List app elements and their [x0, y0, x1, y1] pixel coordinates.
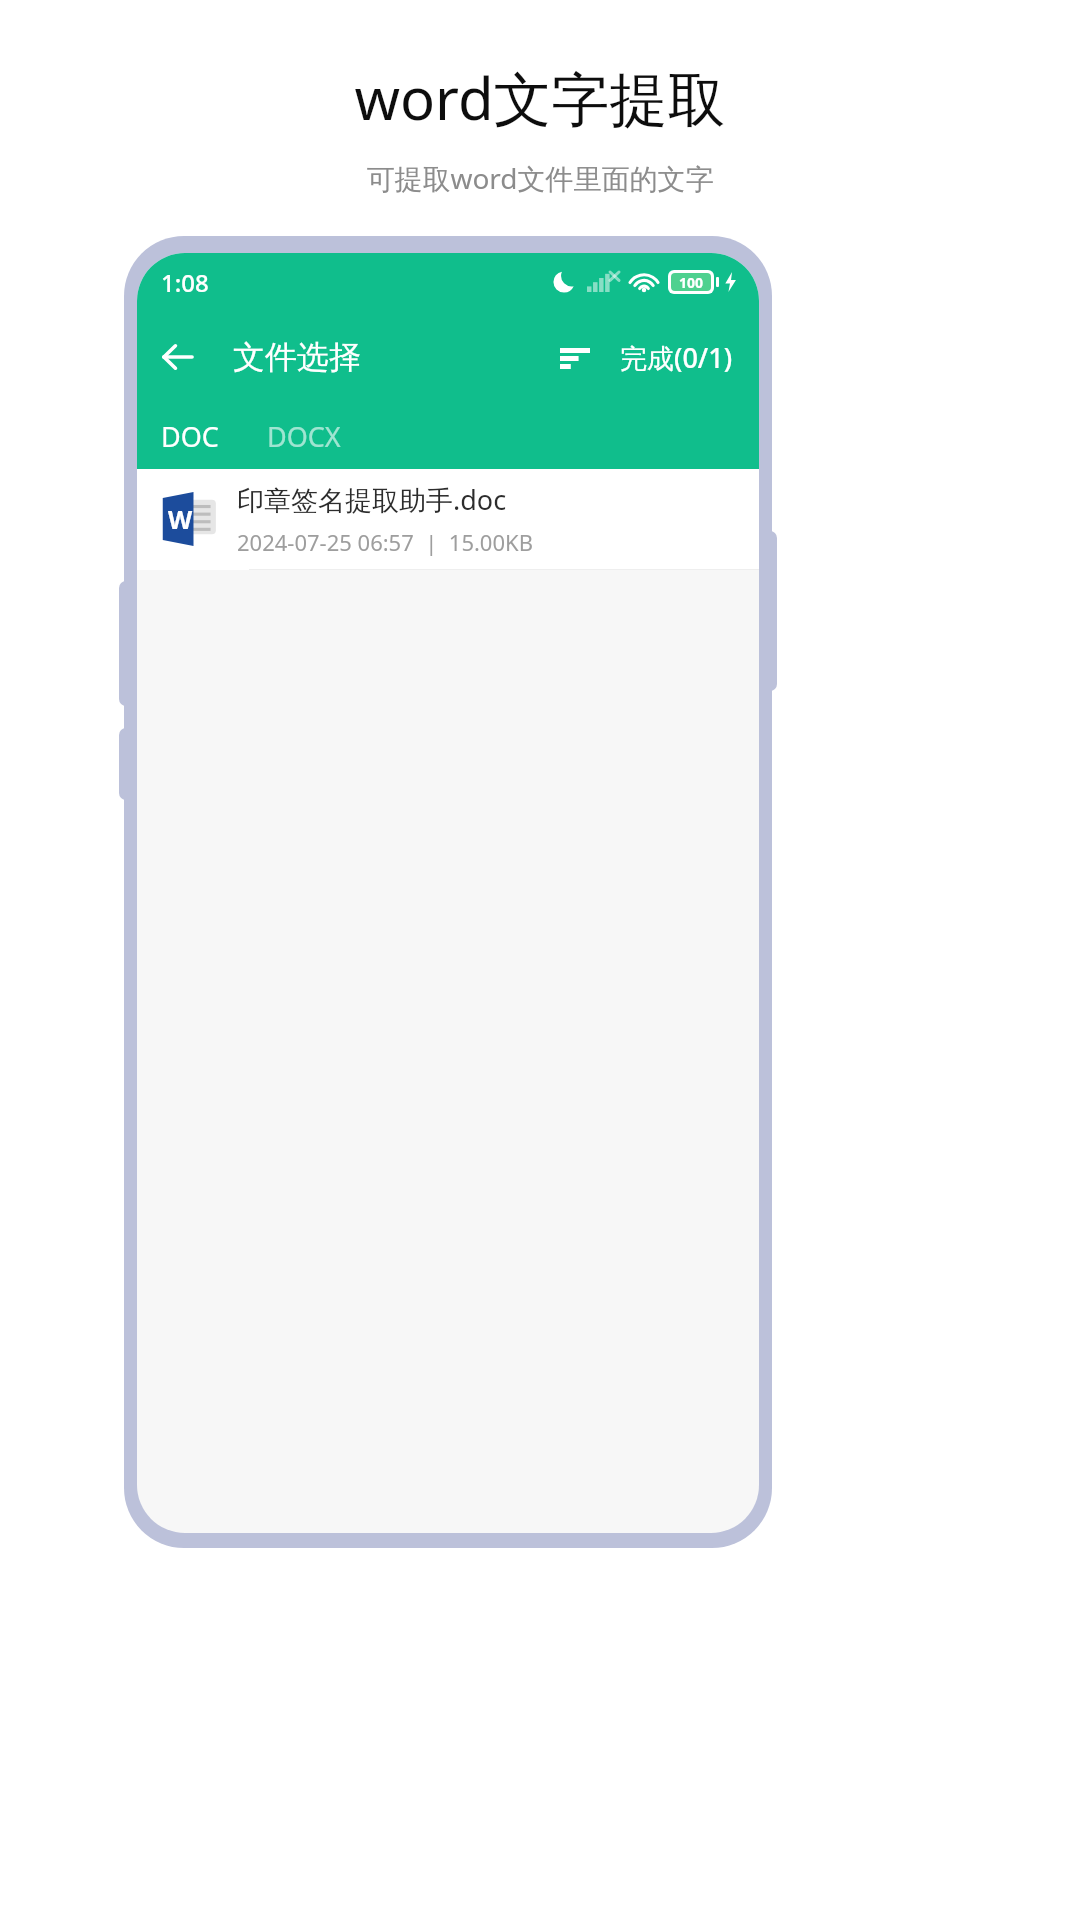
- staticText: DOC: [161, 418, 219, 455]
- staticText: 100: [679, 273, 704, 291]
- staticText: 完成(0/1): [620, 339, 733, 376]
- staticText: 1:08: [161, 266, 209, 299]
- staticText: word文字提取: [354, 58, 726, 137]
- button[interactable]: W: [137, 469, 759, 570]
- button[interactable]: Sort: [546, 329, 604, 387]
- staticText: 文件选择: [233, 337, 361, 377]
- button[interactable]: DOC: [137, 408, 243, 465]
- staticText: DOCX: [267, 418, 341, 455]
- staticText: 可提取word文件里面的文字: [366, 159, 714, 197]
- staticText: W: [168, 502, 193, 536]
- staticText: 2024-07-25 06:57 | 15.00KB: [237, 527, 533, 557]
- button[interactable]: DOCX: [243, 408, 365, 465]
- button[interactable]: 完成(0/1): [604, 327, 749, 388]
- button[interactable]: Back: [149, 328, 207, 386]
- staticText: 印章签名提取助手.doc: [237, 481, 507, 518]
